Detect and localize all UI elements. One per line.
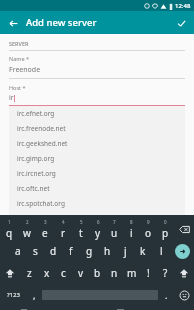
staticText: m [127,266,137,280]
button[interactable]: irc.spotchat.org [9,196,185,211]
button[interactable]: Shift [0,262,20,284]
staticText: x [44,266,50,280]
button[interactable]: n [106,262,123,284]
staticText: r [61,226,66,240]
staticText: Add new server [26,16,97,29]
staticText: a [15,244,21,258]
button[interactable]: d [44,240,62,262]
staticText: Name * [9,55,29,62]
staticText: b [94,266,101,280]
button[interactable]: ? [157,262,174,284]
button[interactable]: 7 [106,218,123,240]
staticText: 2 [26,219,29,225]
staticText: irc.gimp.org [17,154,55,163]
staticText: 5 [80,219,83,225]
button[interactable]: ! [140,262,157,284]
staticText: h [104,244,111,258]
staticText: 4 [62,219,65,225]
staticText: e [42,226,48,240]
staticText: Freenode [9,65,41,75]
staticText: f [69,244,73,258]
button[interactable]: , [26,284,42,306]
button[interactable]: Back [4,14,22,32]
staticText: d [50,244,57,258]
button[interactable]: 0 [157,218,174,240]
staticText: irc.freenode.net [17,124,66,133]
staticText: irc.ircnet.org [17,169,56,178]
staticText: g [86,244,93,258]
button[interactable]: j [116,240,134,262]
staticText: 9 [147,219,150,225]
button[interactable]: Save [172,14,190,32]
staticText: SERVER [9,40,29,47]
button[interactable]: h [98,240,116,262]
button[interactable]: c [55,262,72,284]
staticText: v [78,266,84,280]
staticText: irc.efnet.org [17,109,55,118]
staticText: i [130,226,133,240]
button[interactable]: k [134,240,152,262]
button[interactable]: z [20,262,38,284]
button[interactable]: 8 [123,218,140,240]
button[interactable]: irc.freenode.net [9,121,185,136]
button[interactable]: f [62,240,80,262]
button[interactable]: Next [170,240,194,262]
button[interactable]: irc.ircnet.org [9,166,185,181]
button[interactable]: m [123,262,140,284]
staticText: k [140,244,146,258]
button[interactable]: Backspace [174,218,194,240]
button[interactable]: 9 [140,218,157,240]
staticText: y [95,226,101,240]
staticText: , [33,289,36,301]
button[interactable]: 1 [0,218,18,240]
staticText: 0 [164,219,167,225]
staticText: 12:48 [175,2,191,10]
staticText: 1 [8,219,11,225]
button[interactable]: irc.efnet.org [9,106,185,121]
staticText: w [23,226,31,240]
button[interactable]: v [72,262,89,284]
button[interactable]: irc.gimp.org [9,151,185,166]
staticText: ! [147,266,150,280]
button[interactable]: irc.oftc.net [9,181,185,196]
staticText: irc.oftc.net [17,184,50,193]
staticText: u [111,226,118,240]
button[interactable]: g [80,240,98,262]
staticText: . [165,289,168,301]
staticText: 8 [130,219,133,225]
staticText: o [145,226,152,240]
staticText: irc.spotchat.org [17,199,65,208]
button[interactable]: irc.geekshed.net [9,136,185,151]
staticText: n [111,266,118,280]
staticText: ? [163,266,168,280]
staticText: p [162,226,169,240]
button[interactable]: 6 [89,218,106,240]
button[interactable]: ?123 [0,284,26,306]
staticText: z [27,266,32,280]
staticText: ir [9,93,14,103]
staticText: 7 [113,219,116,225]
staticText: t [79,226,83,240]
staticText: l [160,244,163,258]
button[interactable]: 4 [54,218,72,240]
button[interactable]: b [89,262,106,284]
staticText: 6 [97,219,100,225]
staticText: j [124,244,127,258]
staticText: s [33,244,38,258]
button[interactable]: Emoji [174,284,194,306]
button[interactable]: 3 [36,218,54,240]
button[interactable]: l [152,240,170,262]
button[interactable]: 5 [72,218,89,240]
button[interactable]: Shift [174,262,194,284]
button[interactable]: a [9,240,26,262]
button[interactable]: s [26,240,44,262]
button[interactable]: x [38,262,55,284]
button[interactable]: 2 [18,218,36,240]
staticText: q [6,226,13,240]
staticText: Host * [9,84,26,91]
staticText: ?123 [7,291,20,299]
button[interactable]: . [158,284,174,306]
staticText: irc.geekshed.net [17,139,68,148]
staticText: 3 [44,219,47,225]
